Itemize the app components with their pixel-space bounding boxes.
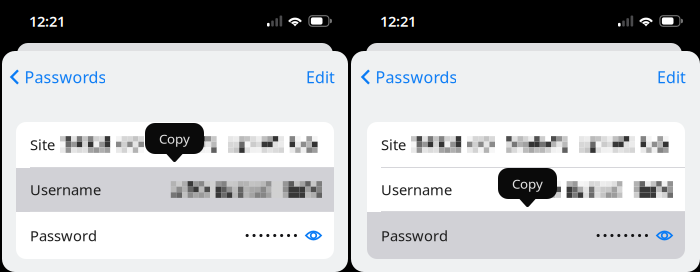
staticText: Site bbox=[381, 135, 406, 154]
staticText: Copy bbox=[512, 175, 543, 192]
staticText: Site bbox=[30, 135, 55, 154]
button[interactable]: Password bbox=[367, 212, 685, 259]
button[interactable]: Edit bbox=[647, 60, 699, 94]
button[interactable]: Username bbox=[16, 168, 334, 212]
button[interactable]: Passwords bbox=[353, 60, 465, 94]
staticText: Edit bbox=[657, 66, 686, 88]
button[interactable]: Username bbox=[367, 168, 685, 212]
staticText: Password bbox=[30, 226, 97, 245]
staticText: Edit bbox=[306, 66, 335, 88]
staticText: Copy bbox=[159, 130, 190, 147]
button[interactable]: Site bbox=[367, 122, 685, 168]
button[interactable]: Edit bbox=[296, 60, 348, 94]
staticText: Password bbox=[381, 226, 448, 245]
staticText: 12:21 bbox=[380, 11, 416, 31]
staticText: Username bbox=[30, 180, 101, 199]
staticText: Passwords bbox=[375, 66, 457, 88]
button[interactable]: Site bbox=[16, 122, 334, 168]
staticText: Passwords bbox=[24, 66, 106, 88]
button[interactable]: Passwords bbox=[2, 60, 114, 94]
button[interactable]: Password bbox=[16, 212, 334, 259]
staticText: Username bbox=[381, 180, 452, 199]
staticText: 12:21 bbox=[29, 11, 65, 31]
